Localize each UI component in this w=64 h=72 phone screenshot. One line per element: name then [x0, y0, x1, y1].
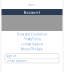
staticText: Contact Support	[21, 42, 43, 46]
staticText: Sign In	[7, 54, 17, 58]
button[interactable]: Create Account	[5, 58, 59, 63]
button[interactable]: About This App	[21, 47, 43, 51]
staticText: Terms and Conditions	[17, 33, 47, 36]
staticText: Store	[28, 3, 35, 6]
button[interactable]: Terms and Conditions	[17, 33, 47, 36]
staticText: Account	[23, 10, 40, 15]
button[interactable]: Contact Support	[21, 42, 43, 46]
staticText: Create Account	[7, 59, 28, 62]
button[interactable]: Account	[1, 9, 62, 15]
staticText: Privacy Policy	[23, 37, 40, 41]
button[interactable]: Privacy Policy	[23, 37, 40, 41]
button[interactable]: Sign In	[5, 54, 59, 58]
staticText: About This App	[21, 47, 43, 51]
